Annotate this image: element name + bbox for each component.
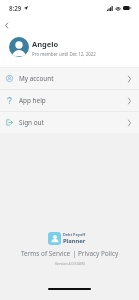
button[interactable]: My account xyxy=(0,68,139,89)
staticText: My account xyxy=(19,74,54,83)
button[interactable]: Terms of Service xyxy=(21,249,71,258)
staticText: Debt Payoff xyxy=(63,232,86,237)
staticText: Sign out xyxy=(19,118,44,127)
staticText: | xyxy=(71,249,78,258)
staticText: Pro member until Dec 12, 2022 xyxy=(32,51,96,57)
staticText: Version 4.0.5(405) xyxy=(55,261,85,266)
button[interactable]: Privacy Policy xyxy=(78,249,119,258)
staticText: 8:29 xyxy=(9,4,22,12)
staticText: Planner xyxy=(63,237,86,245)
staticText: App help xyxy=(19,96,46,105)
button[interactable]: Back xyxy=(0,18,14,33)
staticText: Angelo xyxy=(32,39,59,49)
button[interactable]: App help xyxy=(0,90,139,111)
button[interactable]: Sign out xyxy=(0,112,139,133)
